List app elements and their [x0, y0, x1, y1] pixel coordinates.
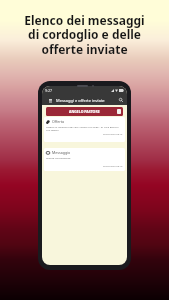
button[interactable]: Search	[117, 96, 125, 104]
staticText: Offerta in memoria del caro Angelo PASTO…	[46, 125, 119, 131]
button[interactable]: Offerta	[44, 117, 125, 142]
button[interactable]: ANGELO PASTORE	[46, 107, 123, 116]
staticText: Messaggio	[52, 150, 71, 155]
button[interactable]: Menu	[46, 96, 54, 104]
button[interactable]: Messaggio	[44, 148, 125, 171]
staticText: Elenco dei messaggi di cordoglio e delle…	[0, 12, 169, 58]
staticText: Offerta	[52, 119, 65, 124]
staticText: 9:27	[45, 88, 53, 93]
staticText: Sentite condoglianze	[46, 156, 71, 159]
staticText: 20/04/2023 08:10	[103, 164, 123, 167]
staticText: Messaggi e offerte inviate	[56, 98, 105, 103]
staticText: ANGELO PASTORE	[69, 109, 100, 114]
staticText: 20/04/2023 08:15	[103, 132, 123, 135]
